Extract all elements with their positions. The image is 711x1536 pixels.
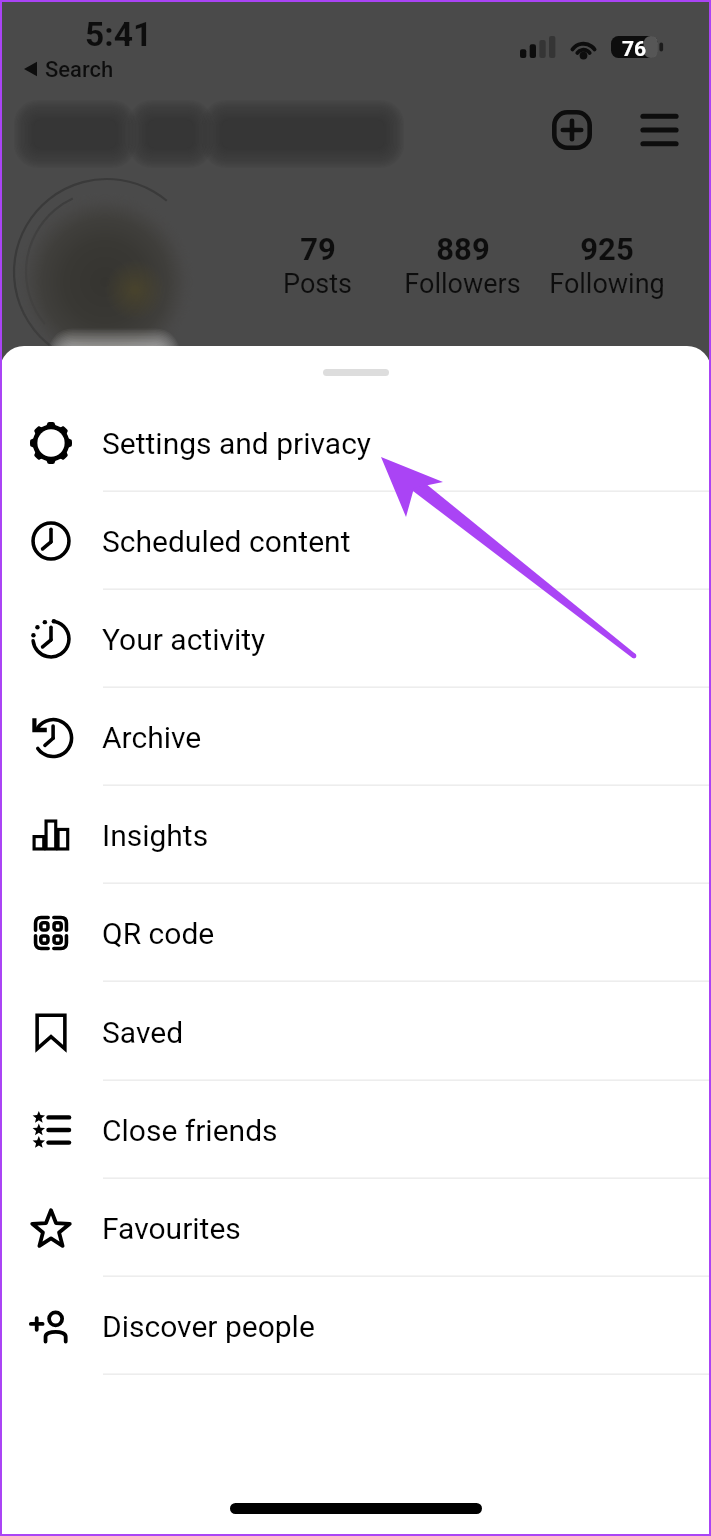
button[interactable]: 79 bbox=[242, 231, 392, 300]
button[interactable]: Archive bbox=[0, 688, 711, 786]
staticText: Favourites bbox=[102, 1211, 241, 1246]
staticText: Close friends bbox=[102, 1113, 278, 1148]
button[interactable]: 925 bbox=[532, 231, 682, 300]
other: Menu bbox=[643, 114, 676, 146]
staticText: Insights bbox=[102, 818, 209, 853]
staticText: Followers bbox=[404, 268, 521, 300]
other: Create bbox=[552, 110, 592, 150]
button[interactable]: Discover people bbox=[0, 1277, 711, 1375]
staticText: 5:41 bbox=[85, 15, 153, 54]
staticText: 925 bbox=[580, 231, 634, 267]
button[interactable]: Scheduled content bbox=[0, 492, 711, 590]
button[interactable]: Settings and privacy bbox=[0, 394, 711, 492]
staticText: Your activity bbox=[102, 622, 266, 657]
staticText: Scheduled content bbox=[102, 524, 351, 559]
staticText: Settings and privacy bbox=[102, 426, 372, 461]
staticText: QR code bbox=[102, 916, 215, 951]
button[interactable]: Insights bbox=[0, 786, 711, 884]
staticText: 79 bbox=[300, 231, 336, 267]
staticText: Archive bbox=[102, 720, 202, 755]
button[interactable]: Favourites bbox=[0, 1179, 711, 1277]
staticText: 889 bbox=[436, 231, 490, 267]
staticText: Discover people bbox=[102, 1309, 315, 1344]
staticText: Following bbox=[549, 268, 665, 300]
staticText: 76 bbox=[622, 37, 647, 62]
staticText: Posts bbox=[283, 268, 352, 300]
button[interactable]: Saved bbox=[0, 983, 711, 1081]
button[interactable]: Your activity bbox=[0, 590, 711, 688]
button[interactable]: QR code bbox=[0, 884, 711, 982]
staticText: Saved bbox=[102, 1015, 184, 1050]
button[interactable]: 889 bbox=[387, 231, 537, 300]
staticText: Search bbox=[45, 57, 114, 83]
button[interactable]: Close friends bbox=[0, 1081, 711, 1179]
